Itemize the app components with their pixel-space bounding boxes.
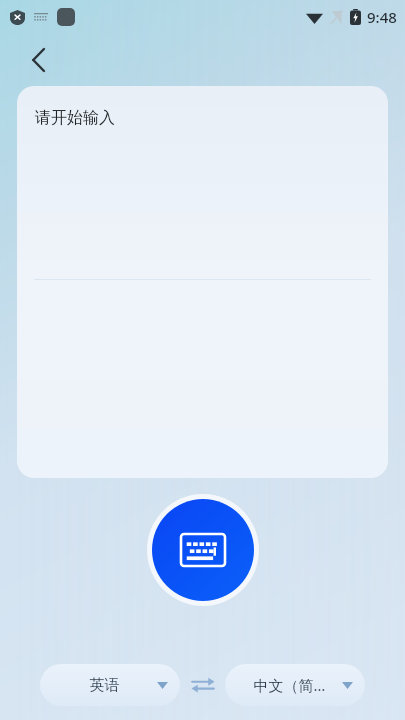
button[interactable]: Keyboard input (152, 499, 254, 601)
staticText: 9:48 (367, 7, 397, 27)
button[interactable]: Swap languages (180, 665, 225, 705)
staticText: 中文（简… (237, 675, 342, 695)
staticText: 请开始输入 (35, 108, 115, 128)
staticText: 英语 (52, 676, 157, 695)
button[interactable]: 英语 (40, 664, 180, 706)
button[interactable]: 请开始输入 (17, 86, 388, 478)
button[interactable]: 中文（简… (225, 664, 365, 706)
button[interactable]: Back (18, 40, 58, 80)
